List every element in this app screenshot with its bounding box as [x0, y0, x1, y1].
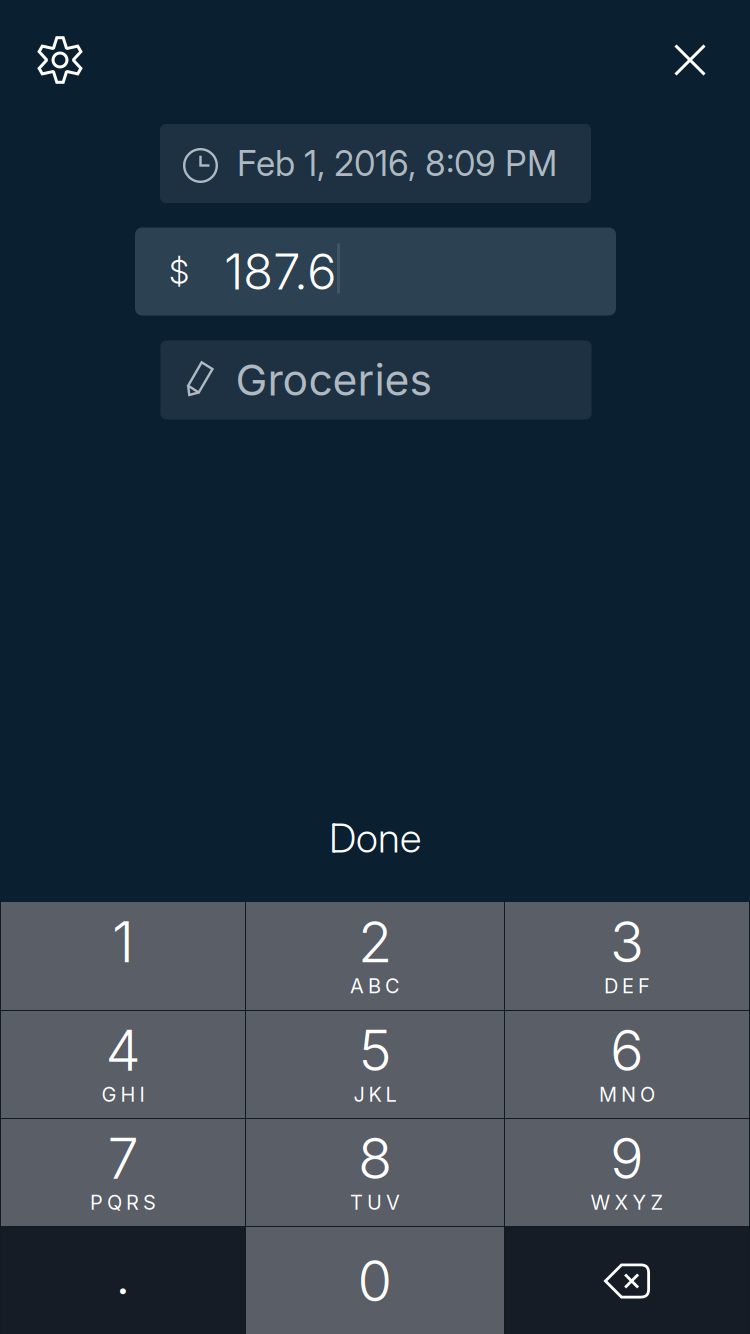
staticText: 4	[105, 1017, 140, 1084]
button[interactable]: 1	[1, 902, 245, 1010]
staticText: A B C	[350, 974, 400, 998]
button[interactable]: Settings	[18, 18, 102, 102]
button[interactable]: 2	[246, 902, 504, 1010]
button[interactable]: Done	[235, 798, 515, 878]
staticText: J K L	[353, 1082, 396, 1107]
staticText: 8	[358, 1125, 392, 1192]
staticText: T U V	[350, 1190, 400, 1215]
button[interactable]: Delete	[505, 1227, 749, 1334]
button[interactable]: 7	[1, 1119, 245, 1226]
staticText: $	[169, 251, 189, 292]
button[interactable]: 9	[505, 1119, 749, 1226]
button[interactable]: Groceries	[160, 340, 591, 419]
staticText: D E F	[604, 974, 650, 998]
button[interactable]: Feb 1, 2016, 8:09 PM	[160, 124, 591, 203]
staticText: 7	[107, 1125, 138, 1192]
button[interactable]: 0	[246, 1227, 504, 1334]
button[interactable]: Decimal point	[1, 1227, 245, 1334]
staticText: 6	[610, 1017, 644, 1084]
button[interactable]: 4	[1, 1011, 245, 1118]
staticText: 0	[357, 1247, 392, 1315]
button[interactable]: 8	[246, 1119, 504, 1226]
button[interactable]: 3	[505, 902, 749, 1010]
staticText: 1	[112, 908, 134, 976]
button[interactable]: 6	[505, 1011, 749, 1118]
button[interactable]: 5	[246, 1011, 504, 1118]
staticText: M N O	[599, 1082, 655, 1107]
staticText: 2	[358, 908, 392, 976]
staticText: G H I	[101, 1082, 144, 1107]
staticText: Groceries	[235, 354, 432, 406]
staticText: 5	[358, 1017, 391, 1084]
staticText: P Q R S	[90, 1190, 156, 1215]
staticText: 187.6	[224, 242, 337, 301]
button[interactable]: Close	[648, 18, 732, 102]
staticText: 9	[610, 1125, 644, 1192]
staticText: W X Y Z	[590, 1190, 663, 1215]
staticText: .	[115, 1240, 131, 1308]
staticText: Done	[329, 814, 421, 862]
staticText: Feb 1, 2016, 8:09 PM	[237, 142, 557, 184]
button[interactable]: $	[135, 227, 616, 315]
staticText: 3	[610, 908, 644, 976]
